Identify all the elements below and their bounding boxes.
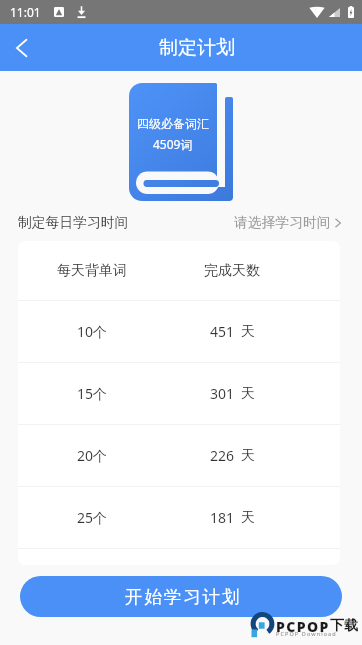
staticText: 天 (241, 509, 255, 527)
staticText: 25个 (77, 508, 108, 527)
button[interactable]: 制定每日学习时间 (0, 204, 362, 241)
button[interactable]: Back (0, 24, 42, 71)
staticText: 11:01 (10, 4, 41, 20)
staticText: 20个 (77, 446, 108, 465)
staticText: 开始学习计划 (125, 586, 242, 608)
staticText: 301 (210, 384, 235, 403)
staticText: 下载 (330, 617, 358, 635)
staticText: 制定计划 (159, 36, 235, 60)
staticText: 10个 (77, 322, 108, 341)
staticText: 4509词 (153, 136, 193, 152)
staticText: 四级必备词汇 (137, 116, 209, 131)
staticText: 451 (210, 322, 235, 341)
staticText: 15个 (77, 384, 108, 403)
staticText: 181 (210, 508, 235, 527)
button[interactable]: 10个 (18, 301, 340, 362)
button[interactable]: 20个 (18, 425, 340, 486)
staticText: 226 (210, 446, 235, 465)
staticText: 天 (241, 385, 255, 403)
button[interactable]: 15个 (18, 363, 340, 424)
button[interactable]: 25个 (18, 487, 340, 548)
staticText: 完成天数 (204, 262, 260, 280)
button[interactable]: 开始学习计划 (20, 576, 342, 617)
staticText: 每天背单词 (57, 262, 127, 280)
staticText: 天 (241, 447, 255, 465)
staticText: PCPOP (276, 617, 330, 636)
staticText: 天 (241, 323, 255, 341)
staticText: PCPOP Download (276, 630, 337, 637)
staticText: 请选择学习时间 (234, 214, 331, 231)
staticText: 制定每日学习时间 (18, 214, 129, 231)
